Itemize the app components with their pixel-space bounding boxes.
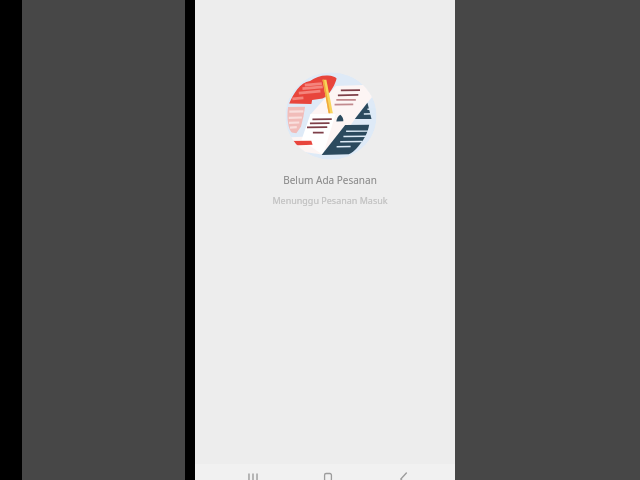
- staticText: Menunggu Pesanan Masuk: [272, 194, 388, 206]
- staticText: Belum Ada Pesanan: [283, 173, 377, 187]
- button[interactable]: Recent apps: [241, 464, 265, 480]
- button[interactable]: Home: [316, 464, 340, 480]
- button[interactable]: Back: [391, 464, 415, 480]
